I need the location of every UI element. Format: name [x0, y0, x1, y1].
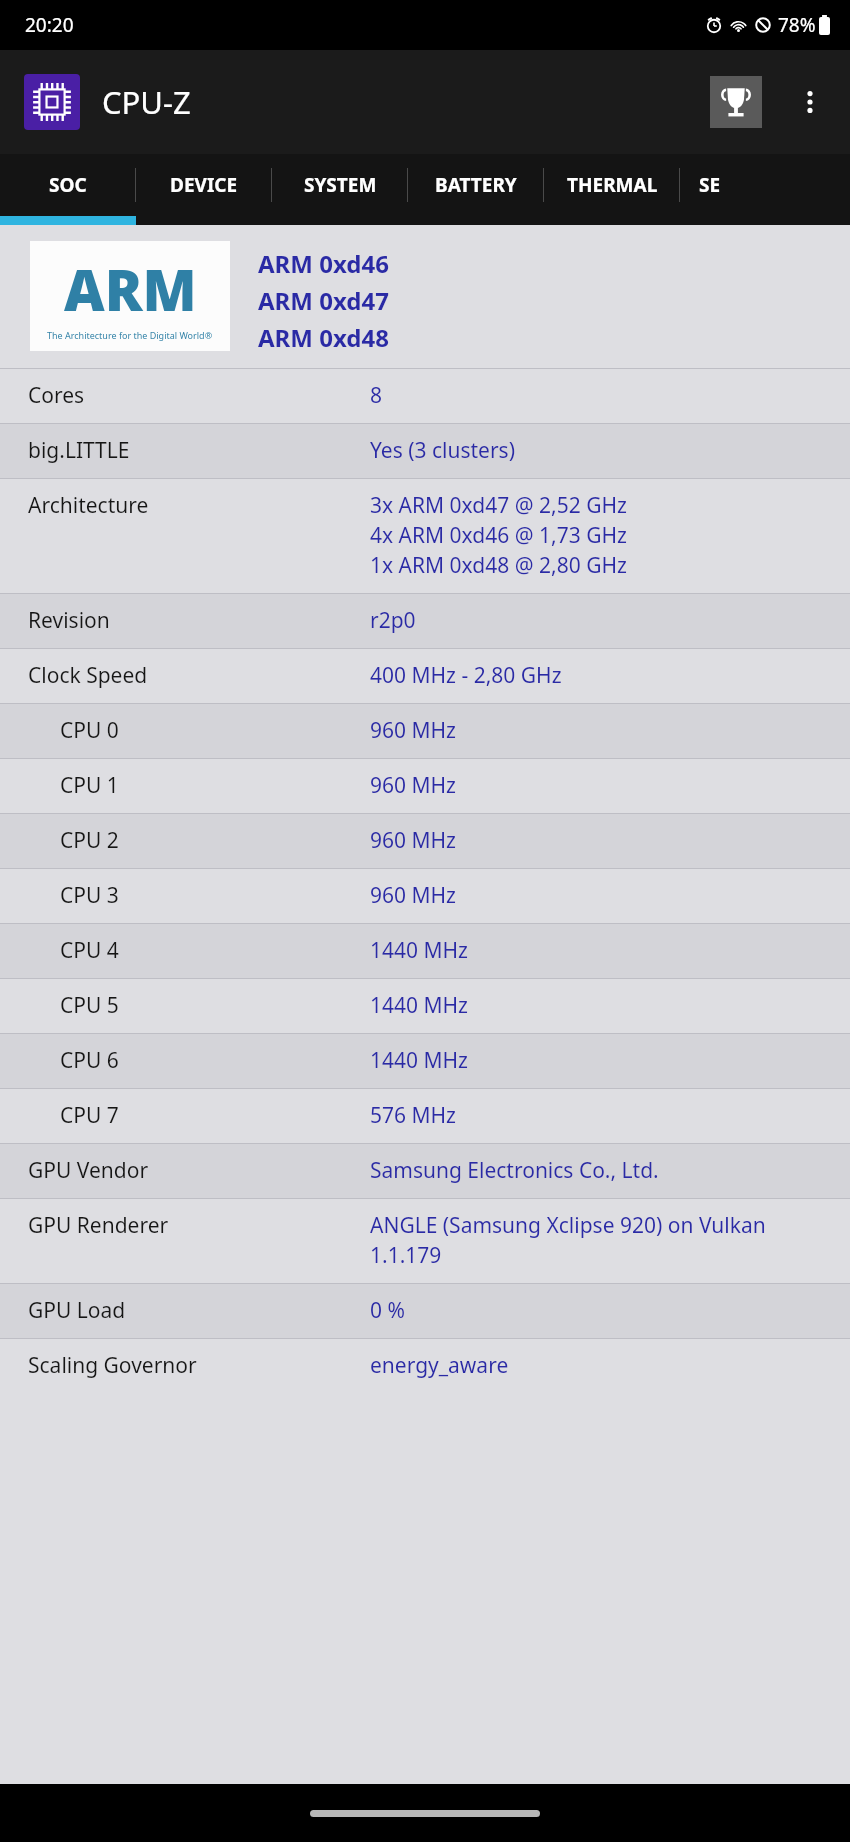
button[interactable]: Home — [310, 1810, 540, 1817]
button[interactable]: Benchmark — [710, 76, 762, 128]
button[interactable]: CPU 0 — [0, 703, 850, 758]
button[interactable]: CPU 1 — [0, 758, 850, 813]
staticText: CPU 2 — [60, 826, 370, 855]
staticText: 960 MHz — [370, 771, 456, 800]
button[interactable]: CPU 7 — [0, 1088, 850, 1143]
button[interactable]: Clock Speed — [0, 648, 850, 703]
staticText: CPU 1 — [60, 771, 370, 800]
button[interactable]: CPU 4 — [0, 923, 850, 978]
button[interactable]: DEVICE — [136, 154, 272, 216]
button[interactable]: big.LITTLE — [0, 423, 850, 478]
staticText: 400 MHz - 2,80 GHz — [370, 661, 562, 690]
staticText: 3x ARM 0xd47 @ 2,52 GHz — [370, 491, 627, 520]
staticText: 78% — [778, 12, 816, 38]
button[interactable]: Architecture — [0, 478, 850, 593]
button[interactable]: BATTERY — [408, 154, 544, 216]
staticText: 20:20 — [25, 12, 74, 38]
staticText: DEVICE — [170, 172, 238, 198]
staticText: CPU 3 — [60, 881, 370, 910]
staticText: 960 MHz — [370, 716, 456, 745]
staticText: 1x ARM 0xd48 @ 2,80 GHz — [370, 551, 627, 580]
staticText: CPU 0 — [60, 716, 370, 745]
staticText: BATTERY — [435, 172, 517, 198]
staticText: ARM 0xd48 — [258, 321, 389, 354]
staticText: GPU Vendor — [28, 1156, 370, 1185]
staticText: ANGLE (Samsung Xclipse 920) on Vulkan — [370, 1211, 766, 1240]
staticText: ARM 0xd46 — [258, 247, 389, 280]
staticText: Cores — [28, 381, 370, 410]
staticText: 4x ARM 0xd46 @ 1,73 GHz — [370, 521, 627, 550]
staticText: SE — [699, 172, 721, 198]
staticText: SOC — [49, 172, 87, 198]
staticText: Revision — [28, 606, 370, 635]
staticText: Scaling Governor — [28, 1351, 370, 1380]
staticText: CPU 6 — [60, 1046, 370, 1075]
staticText: Clock Speed — [28, 661, 370, 690]
staticText: GPU Renderer — [28, 1211, 370, 1240]
button[interactable]: GPU Renderer — [0, 1198, 850, 1283]
staticText: CPU-Z — [102, 81, 191, 123]
button[interactable]: CPU 3 — [0, 868, 850, 923]
staticText: 8 — [370, 381, 383, 410]
button[interactable]: Revision — [0, 593, 850, 648]
button[interactable]: CPU 6 — [0, 1033, 850, 1088]
button[interactable]: More options — [784, 76, 836, 128]
staticText: 0 % — [370, 1296, 405, 1325]
button[interactable]: SE — [680, 154, 740, 216]
button[interactable]: THERMAL — [544, 154, 680, 216]
staticText: 1440 MHz — [370, 936, 468, 965]
button[interactable]: Cores — [0, 368, 850, 423]
staticText: ARM — [64, 251, 197, 327]
staticText: big.LITTLE — [28, 436, 370, 465]
staticText: 960 MHz — [370, 826, 456, 855]
staticText: CPU 7 — [60, 1101, 370, 1130]
staticText: 960 MHz — [370, 881, 456, 910]
staticText: energy_aware — [370, 1351, 509, 1380]
staticText: The Architecture for the Digital World® — [47, 329, 213, 341]
staticText: Yes (3 clusters) — [370, 436, 515, 465]
staticText: Architecture — [28, 491, 370, 520]
staticText: ARM 0xd47 — [258, 284, 389, 317]
staticText: 1440 MHz — [370, 1046, 468, 1075]
button[interactable]: GPU Load — [0, 1283, 850, 1338]
staticText: CPU 4 — [60, 936, 370, 965]
button[interactable]: CPU 2 — [0, 813, 850, 868]
button[interactable]: CPU 5 — [0, 978, 850, 1033]
staticText: 1.1.179 — [370, 1241, 442, 1270]
button[interactable]: SYSTEM — [272, 154, 408, 216]
staticText: Samsung Electronics Co., Ltd. — [370, 1156, 659, 1185]
staticText: 576 MHz — [370, 1101, 456, 1130]
staticText: r2p0 — [370, 606, 416, 635]
staticText: SYSTEM — [304, 172, 377, 198]
staticText: CPU 5 — [60, 991, 370, 1020]
button[interactable]: SOC — [0, 154, 136, 216]
staticText: 1440 MHz — [370, 991, 468, 1020]
button[interactable]: GPU Vendor — [0, 1143, 850, 1198]
staticText: GPU Load — [28, 1296, 370, 1325]
button[interactable]: Scaling Governor — [0, 1338, 850, 1393]
staticText: THERMAL — [567, 172, 658, 198]
